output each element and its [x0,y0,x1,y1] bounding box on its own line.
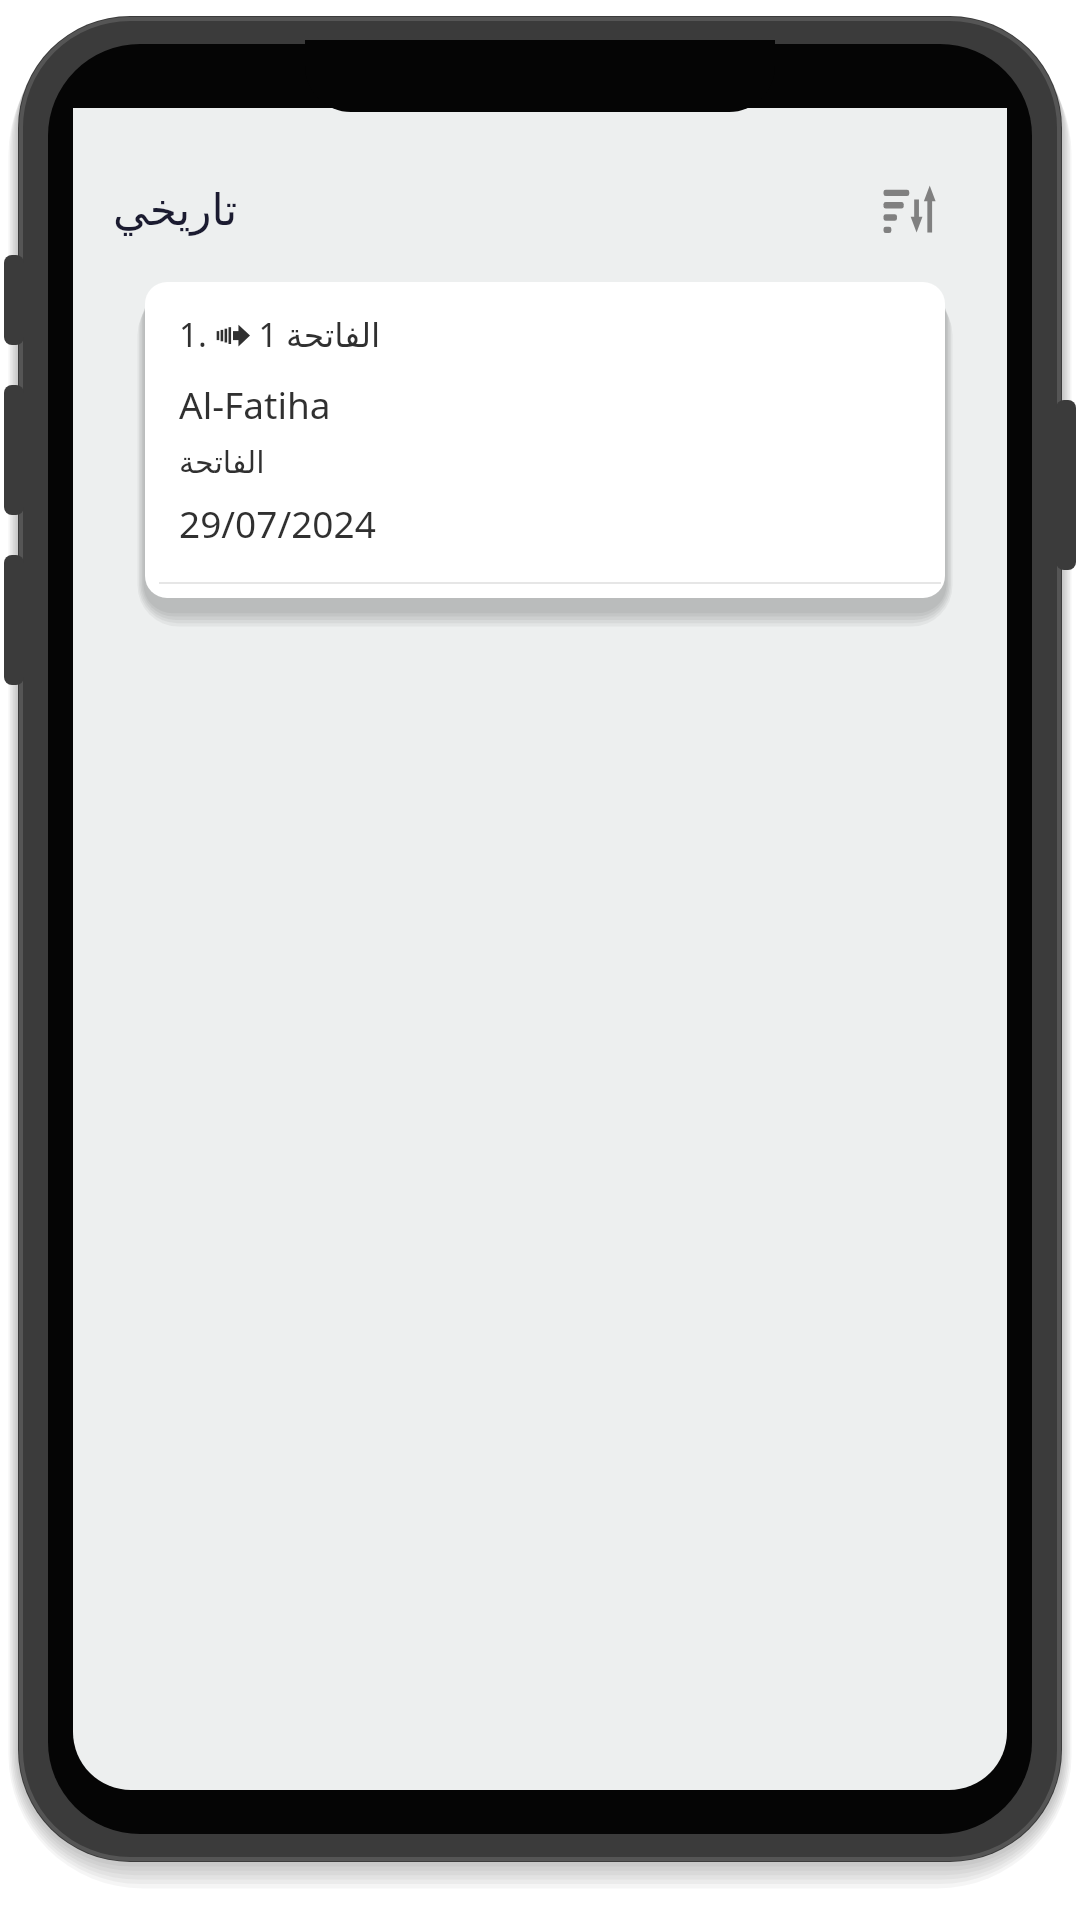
staticText: 29/07/2024 [179,498,376,548]
staticText: 1. [179,312,216,357]
button[interactable]: 1. [145,282,945,598]
staticText: 1 الفاتحة [250,312,381,357]
button[interactable]: Sort [873,173,945,245]
staticText: Al-Fatiha [179,379,331,429]
staticText: تاريخي [113,184,238,235]
staticText: الفاتحة [179,445,265,480]
